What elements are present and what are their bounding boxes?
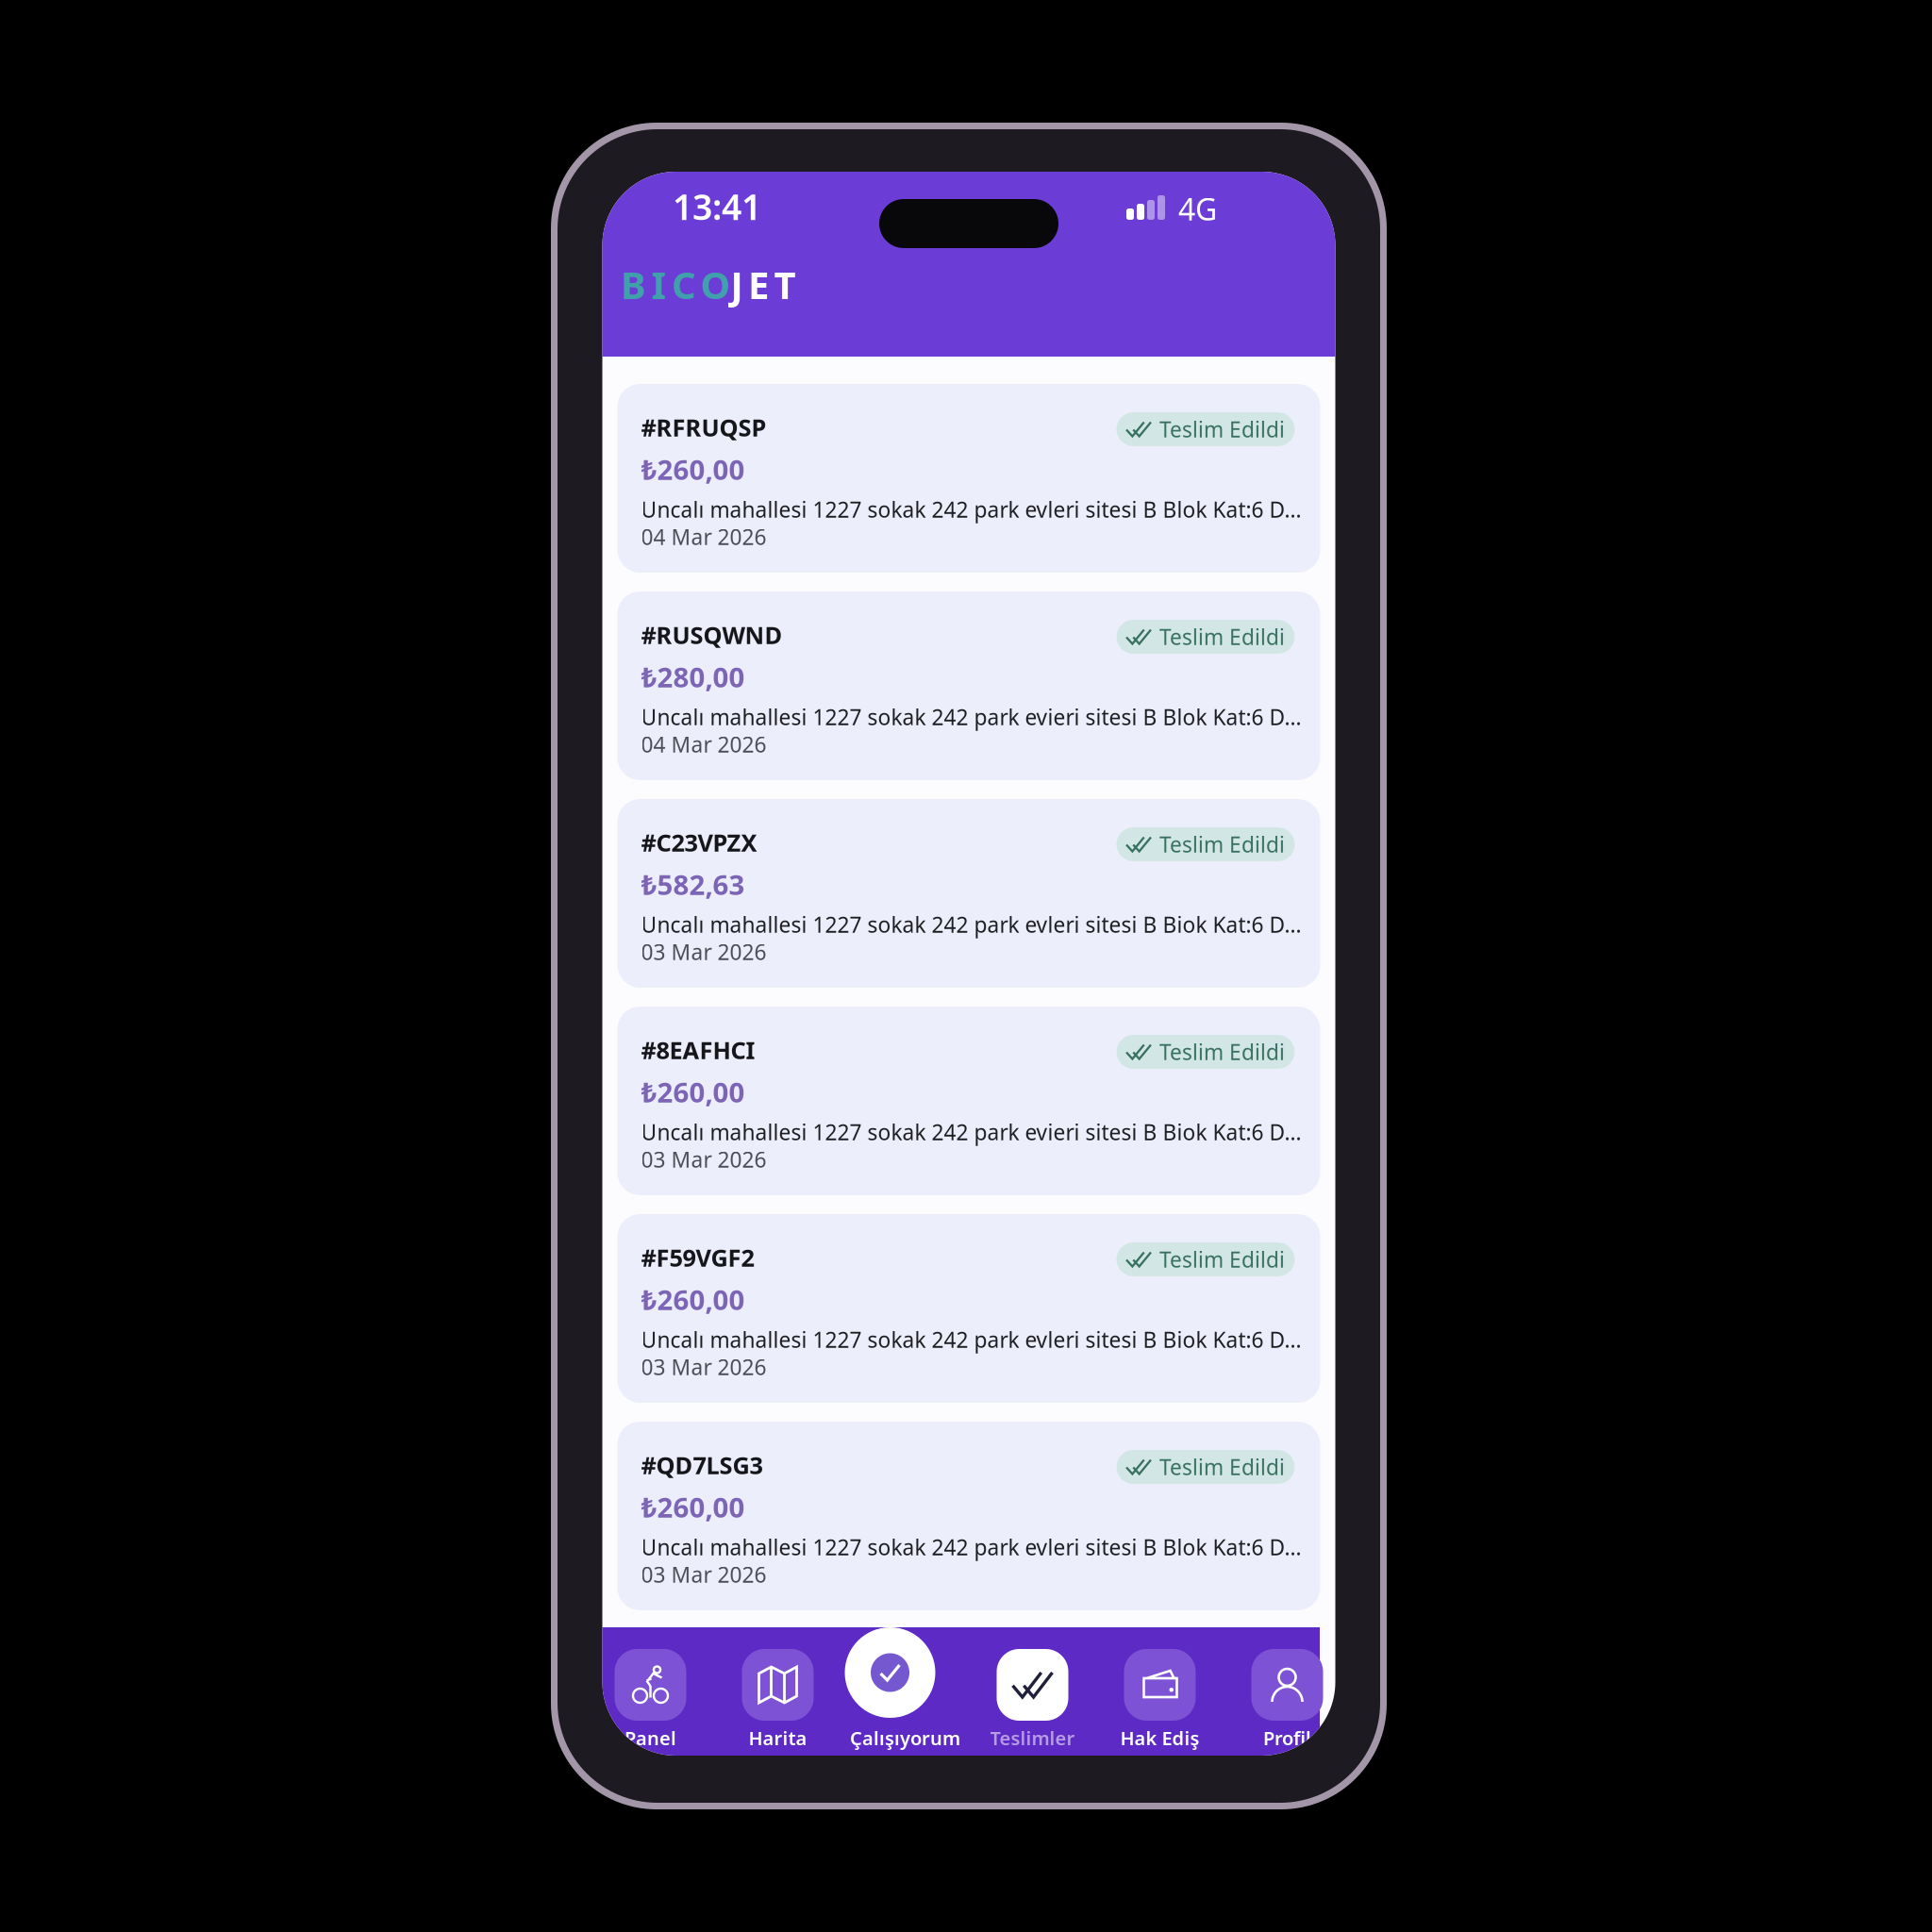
staticText: Uncalı mahallesi 1227 sokak 242 park evl… — [641, 1325, 1301, 1354]
staticText: BICO — [621, 259, 731, 310]
staticText: #RFRUQSP — [641, 411, 766, 443]
staticText: 03 Mar 2026 — [641, 1145, 766, 1174]
staticText: Uncalı mahallesi 1227 sokak 242 park evi… — [641, 1118, 1301, 1146]
staticText: Harita — [749, 1725, 807, 1750]
staticText: #8EAFHCI — [641, 1034, 755, 1066]
button[interactable]: Harita — [714, 1649, 841, 1750]
staticText: Uncalı mahallesi 1227 sokak 242 park evl… — [641, 495, 1301, 524]
staticText: ₺280,00 — [641, 658, 745, 695]
staticText: Teslim Edildi — [1159, 415, 1285, 443]
staticText: 03 Mar 2026 — [641, 1560, 766, 1589]
staticText: #F59VGF2 — [641, 1241, 754, 1273]
staticText: JET — [731, 259, 796, 310]
staticText: 4G — [1178, 189, 1217, 229]
staticText: ₺260,00 — [641, 1281, 745, 1318]
button[interactable]: Teslim Edildi — [617, 1007, 1320, 1195]
staticText: Teslim Edildi — [1159, 830, 1285, 858]
staticText: ₺582,63 — [641, 866, 745, 903]
staticText: #C23VPZX — [641, 826, 757, 858]
staticText: 04 Mar 2026 — [641, 730, 766, 759]
button[interactable]: Teslimler — [969, 1649, 1096, 1750]
staticText: ₺260,00 — [641, 1074, 745, 1110]
button[interactable]: Çalışıyorum — [841, 1649, 969, 1750]
button[interactable]: Panel — [587, 1649, 714, 1750]
staticText: Teslimler — [990, 1725, 1075, 1750]
staticText: ₺260,00 — [641, 451, 745, 488]
staticText: 04 Mar 2026 — [641, 523, 766, 551]
button[interactable]: Teslim Edildi — [617, 1214, 1320, 1403]
staticText: #RUSQWND — [641, 619, 783, 651]
staticText: Panel — [625, 1725, 676, 1750]
staticText: Teslim Edildi — [1159, 623, 1285, 651]
button[interactable]: Teslim Edildi — [617, 384, 1320, 573]
button[interactable]: Teslim Edildi — [617, 799, 1320, 988]
staticText: 03 Mar 2026 — [641, 1353, 766, 1381]
staticText: Çalışıyorum — [850, 1725, 960, 1750]
button[interactable]: Teslim Edildi — [617, 1422, 1320, 1610]
staticText: Hak Ediş — [1120, 1725, 1199, 1750]
button[interactable]: Çalışıyorum — [845, 1627, 935, 1718]
button[interactable]: Teslim Edildi — [617, 591, 1320, 780]
staticText: Uncalı mahallesi 1227 sokak 242 park evl… — [641, 1533, 1301, 1561]
staticText: 13:41 — [673, 183, 761, 230]
staticText: Teslim Edildi — [1159, 1245, 1285, 1274]
staticText: 03 Mar 2026 — [641, 938, 766, 966]
staticText: Profil — [1263, 1725, 1311, 1750]
staticText: Uncalı mahallesi 1227 sokak 242 park evi… — [641, 703, 1301, 731]
button[interactable]: Hak Ediş — [1096, 1649, 1224, 1750]
staticText: Teslim Edildi — [1159, 1453, 1285, 1481]
button[interactable]: Profil — [1224, 1649, 1351, 1750]
staticText: #QD7LSG3 — [641, 1449, 763, 1481]
staticText: ₺260,00 — [641, 1489, 745, 1525]
staticText: Uncalı mahallesi 1227 sokak 242 park evl… — [641, 910, 1301, 939]
staticText: Teslim Edildi — [1159, 1038, 1285, 1066]
